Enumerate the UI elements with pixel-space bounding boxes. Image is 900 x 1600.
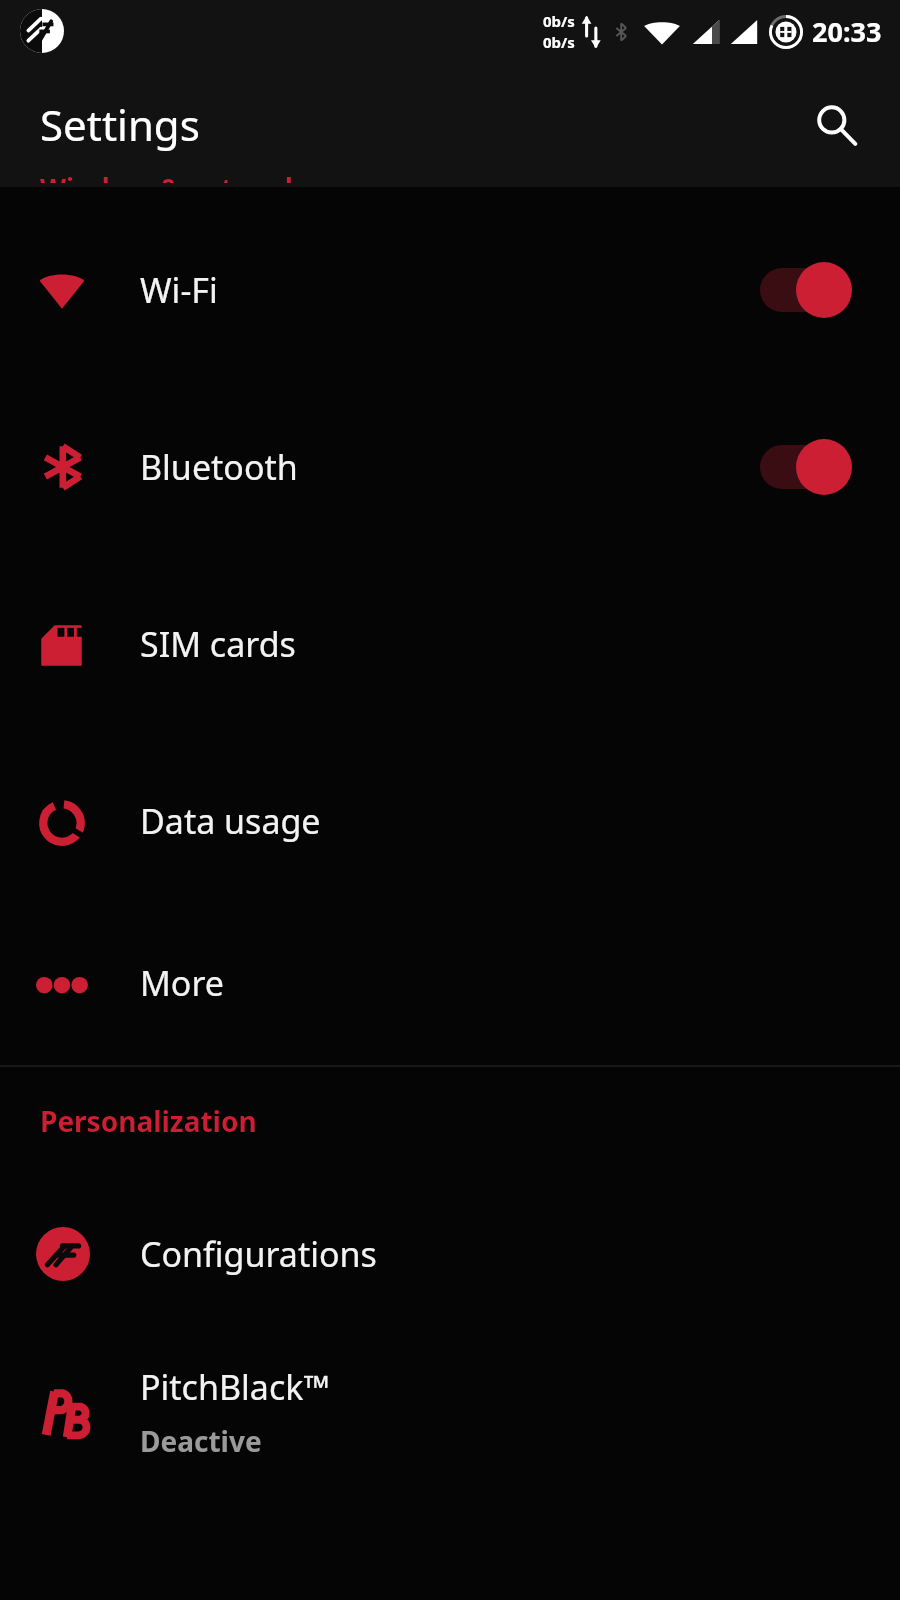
staticText: 20:33	[812, 13, 882, 50]
button[interactable]: Wi-Fi toggle	[754, 258, 864, 322]
staticText: Configurations	[140, 1231, 377, 1277]
button[interactable]: More	[0, 909, 900, 1057]
button[interactable]: PitchBlack™	[0, 1333, 900, 1491]
staticText: Personalization	[40, 1102, 257, 1140]
staticText: Settings	[40, 96, 200, 153]
button[interactable]: Bluetooth	[0, 378, 900, 555]
staticText: 0b/s	[543, 11, 575, 31]
staticText: Wireless & networks	[40, 169, 316, 183]
staticText: Deactive	[140, 1422, 262, 1460]
button[interactable]: Data usage	[0, 732, 900, 909]
staticText: Wi-Fi	[140, 267, 218, 313]
staticText: Data usage	[140, 798, 321, 844]
button[interactable]: Configurations	[0, 1175, 900, 1333]
staticText: 0b/s	[543, 32, 575, 52]
button[interactable]: Wi-Fi	[0, 201, 900, 378]
button[interactable]: Bluetooth toggle	[754, 435, 864, 499]
staticText: SIM cards	[140, 621, 296, 667]
button[interactable]: SIM cards	[0, 555, 900, 732]
staticText: PitchBlack™	[140, 1364, 330, 1410]
button[interactable]: Search	[800, 89, 872, 161]
staticText: Bluetooth	[140, 444, 298, 490]
staticText: More	[140, 960, 224, 1006]
